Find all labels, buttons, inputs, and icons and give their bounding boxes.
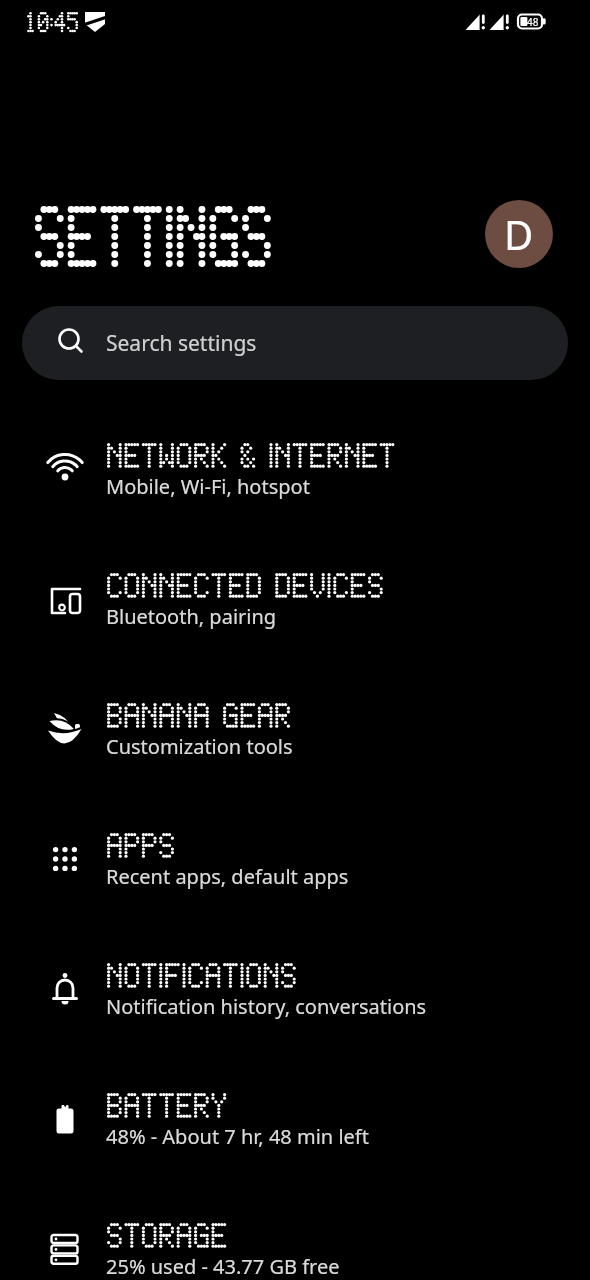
button[interactable]: Recent apps, default apps [0,815,590,945]
button[interactable]: Search settings [22,306,568,380]
staticText: Recent apps, default apps [106,863,349,890]
staticText: Bluetooth, pairing [106,603,277,630]
staticText: Search settings [106,329,257,358]
button[interactable]: 48% - About 7 hr, 48 min left [0,1075,590,1205]
staticText: Customization tools [106,733,293,760]
staticText: D [504,207,534,261]
button[interactable]: Mobile, Wi-Fi, hotspot [0,425,590,555]
staticText: 25% used - 43.77 GB free [106,1253,340,1280]
button[interactable]: Customization tools [0,685,590,815]
button[interactable]: D [485,200,553,268]
button[interactable]: Bluetooth, pairing [0,555,590,685]
staticText: 48 [527,15,539,29]
staticText: Mobile, Wi-Fi, hotspot [106,473,310,500]
button[interactable]: 25% used - 43.77 GB free [0,1205,590,1280]
staticText: 48% - About 7 hr, 48 min left [106,1123,369,1150]
button[interactable]: Notification history, conversations [0,945,590,1075]
staticText: Notification history, conversations [106,993,427,1020]
